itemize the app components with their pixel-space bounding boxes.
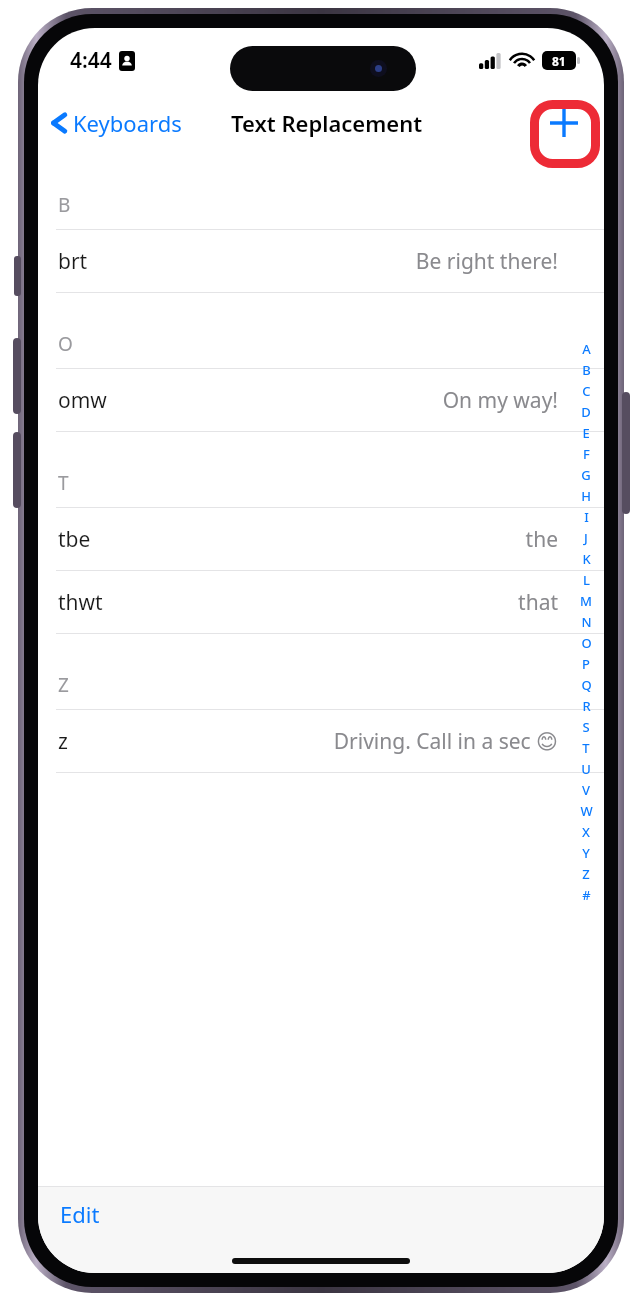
button[interactable]: z bbox=[38, 710, 604, 773]
staticText: the bbox=[525, 525, 558, 554]
staticText: N bbox=[581, 613, 592, 631]
staticText: B bbox=[582, 361, 591, 379]
staticText: # bbox=[582, 886, 591, 904]
button[interactable]: Alphabet index bbox=[574, 340, 598, 904]
button[interactable]: Keyboards bbox=[38, 100, 192, 146]
staticText: Q bbox=[581, 676, 592, 694]
staticText: Z bbox=[582, 865, 590, 883]
staticText: M bbox=[580, 592, 592, 610]
staticText: Keyboards bbox=[73, 108, 182, 138]
staticText: Y bbox=[582, 844, 590, 862]
staticText: S bbox=[582, 718, 590, 736]
staticText: On my way! bbox=[442, 386, 558, 415]
staticText: omw bbox=[58, 386, 107, 415]
staticText: z bbox=[58, 727, 68, 756]
button[interactable]: omw bbox=[38, 369, 604, 432]
staticText: tbe bbox=[58, 525, 91, 554]
staticText: K bbox=[582, 550, 591, 568]
staticText: Driving. Call in a sec 😊 bbox=[333, 727, 558, 756]
staticText: C bbox=[582, 382, 591, 400]
staticText: T bbox=[582, 739, 590, 757]
staticText: E bbox=[582, 424, 590, 442]
staticText: J bbox=[584, 529, 588, 547]
staticText: O bbox=[581, 634, 592, 652]
staticText: P bbox=[582, 655, 590, 673]
staticText: Edit bbox=[60, 1199, 100, 1229]
staticText: A bbox=[582, 340, 591, 358]
staticText: Z bbox=[58, 672, 69, 698]
staticText: brt bbox=[58, 247, 88, 276]
staticText: 81 bbox=[552, 53, 566, 69]
button[interactable]: thwt bbox=[38, 571, 604, 634]
staticText: L bbox=[583, 571, 590, 589]
staticText: U bbox=[581, 760, 591, 778]
staticText: W bbox=[580, 802, 593, 820]
button[interactable]: Edit bbox=[50, 1193, 110, 1235]
staticText: T bbox=[58, 470, 69, 496]
staticText: X bbox=[582, 823, 590, 841]
staticText: G bbox=[581, 466, 591, 484]
staticText: that bbox=[518, 588, 558, 617]
button[interactable]: brt bbox=[38, 230, 604, 293]
staticText: O bbox=[58, 331, 73, 357]
staticText: Text Replacement bbox=[231, 108, 423, 138]
button[interactable]: Add text replacement bbox=[540, 99, 588, 147]
staticText: thwt bbox=[58, 588, 103, 617]
staticText: F bbox=[583, 445, 590, 463]
staticText: Be right there! bbox=[415, 247, 558, 276]
staticText: I bbox=[584, 508, 589, 526]
staticText: H bbox=[581, 487, 591, 505]
staticText: 4:44 bbox=[70, 46, 112, 75]
button[interactable]: tbe bbox=[38, 508, 604, 571]
staticText: B bbox=[58, 192, 71, 218]
staticText: V bbox=[582, 781, 590, 799]
staticText: D bbox=[581, 403, 591, 421]
staticText: R bbox=[582, 697, 591, 715]
